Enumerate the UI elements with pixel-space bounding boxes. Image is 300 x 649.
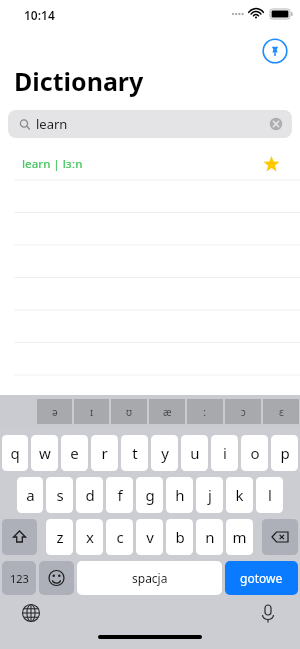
staticText: m — [232, 527, 247, 547]
button[interactable]: r — [91, 435, 118, 471]
button[interactable]: i — [211, 435, 238, 471]
button[interactable]: n — [196, 519, 223, 555]
button[interactable]: ː — [187, 399, 223, 424]
button[interactable]: Emoji — [39, 561, 74, 595]
button[interactable]: m — [226, 519, 253, 555]
staticText: q — [10, 443, 20, 463]
button[interactable]: learn | lɜːn — [0, 148, 300, 180]
button[interactable]: a — [17, 477, 43, 513]
button[interactable]: learn — [8, 110, 292, 138]
staticText: i — [223, 443, 227, 463]
button[interactable]: ə — [37, 399, 72, 424]
button[interactable]: g — [136, 477, 163, 513]
staticText: a — [26, 485, 35, 505]
button[interactable]: c — [106, 519, 133, 555]
staticText: learn | lɜːn — [22, 156, 83, 172]
staticText: y — [161, 443, 169, 463]
staticText: ə — [52, 405, 58, 419]
button[interactable]: Pin — [262, 38, 288, 64]
staticText: 123 — [10, 571, 29, 586]
button[interactable]: f — [106, 477, 133, 513]
staticText: spacja — [132, 570, 168, 586]
button[interactable]: s — [46, 477, 73, 513]
button[interactable]: 123 — [2, 561, 36, 595]
button[interactable]: Shift — [2, 519, 37, 555]
staticText: f — [117, 485, 123, 505]
button[interactable]: p — [271, 435, 298, 471]
button[interactable]: æ — [149, 399, 185, 424]
staticText: o — [250, 443, 260, 463]
button[interactable]: t — [121, 435, 148, 471]
staticText: j — [208, 485, 212, 505]
button[interactable]: b — [166, 519, 193, 555]
staticText: w — [39, 443, 51, 463]
button[interactable]: ɪ — [74, 399, 109, 424]
button[interactable]: l — [256, 477, 283, 513]
staticText: z — [56, 527, 64, 547]
staticText: n — [205, 527, 215, 547]
staticText: s — [56, 485, 64, 505]
staticText: g — [145, 485, 155, 505]
staticText: k — [235, 485, 244, 505]
button[interactable]: x — [76, 519, 103, 555]
staticText: e — [70, 443, 79, 463]
button[interactable]: u — [181, 435, 208, 471]
button[interactable]: gotowe — [225, 561, 298, 595]
staticText: t — [132, 443, 138, 463]
staticText: ɔ — [241, 405, 246, 419]
button[interactable]: Dictation — [255, 600, 281, 626]
button[interactable]: d — [76, 477, 103, 513]
staticText: d — [85, 485, 95, 505]
staticText: gotowe — [240, 570, 283, 586]
button[interactable]: z — [46, 519, 73, 555]
button[interactable]: o — [241, 435, 268, 471]
button[interactable]: h — [166, 477, 193, 513]
staticText: u — [190, 443, 200, 463]
staticText: h — [175, 485, 185, 505]
button[interactable]: e — [61, 435, 88, 471]
button[interactable]: j — [196, 477, 223, 513]
staticText: r — [101, 443, 108, 463]
button[interactable]: y — [151, 435, 178, 471]
staticText: l — [268, 485, 272, 505]
button[interactable]: w — [31, 435, 58, 471]
button[interactable]: Backspace — [262, 519, 298, 555]
staticText: ː — [203, 405, 207, 419]
staticText: Dictionary — [14, 64, 144, 98]
staticText: v — [146, 527, 154, 547]
button[interactable]: k — [226, 477, 253, 513]
button[interactable]: v — [136, 519, 163, 555]
button[interactable]: ɛ — [263, 399, 299, 424]
staticText: p — [280, 443, 290, 463]
staticText: æ — [163, 405, 172, 419]
staticText: ɪ — [90, 405, 94, 419]
staticText: learn — [36, 115, 68, 133]
button[interactable]: ʊ — [111, 399, 147, 424]
staticText: ɛ — [279, 405, 284, 419]
staticText: ʊ — [126, 405, 133, 419]
staticText: c — [116, 527, 124, 547]
button[interactable]: q — [2, 435, 28, 471]
button[interactable]: ɔ — [225, 399, 261, 424]
staticText: x — [86, 527, 94, 547]
button[interactable]: Change language — [18, 600, 44, 626]
staticText: b — [175, 527, 185, 547]
button[interactable]: spacja — [77, 561, 222, 595]
staticText: 10:14 — [24, 7, 55, 23]
